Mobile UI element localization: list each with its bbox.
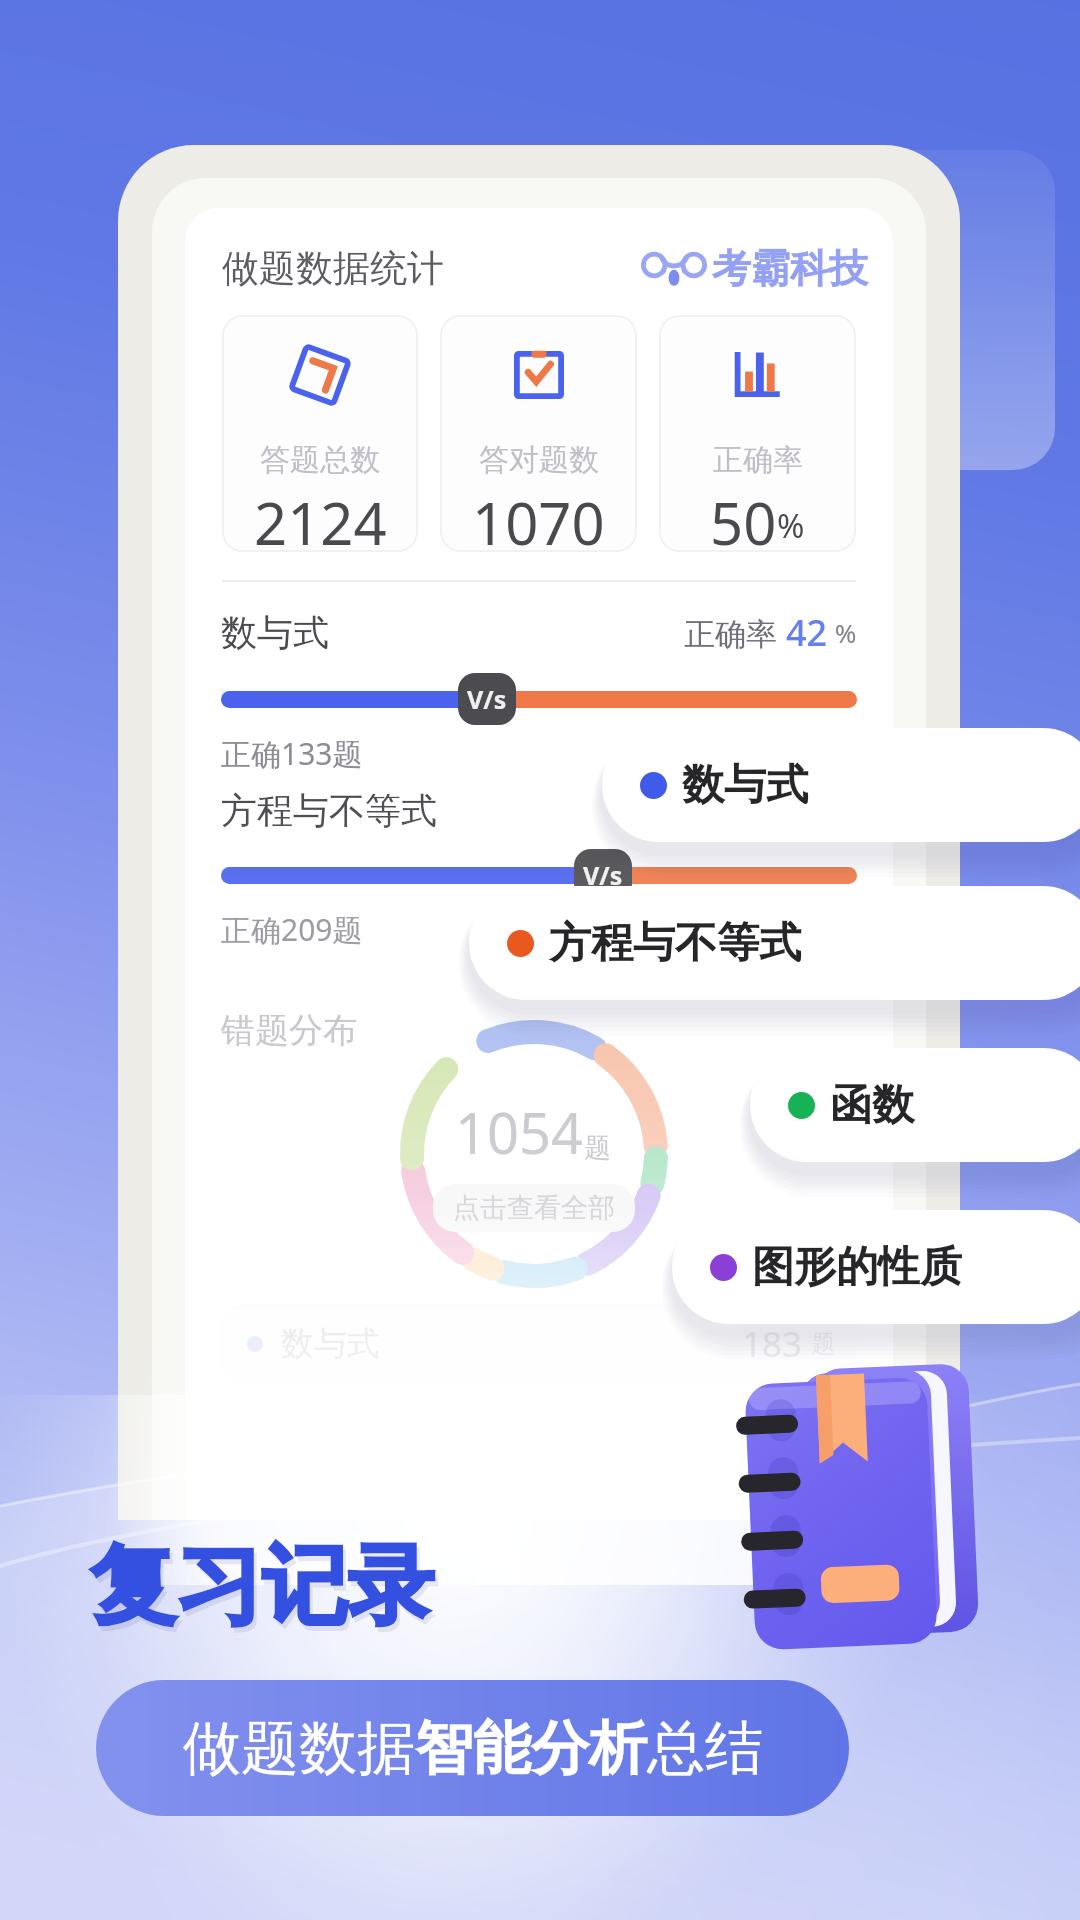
staticText: 1054 bbox=[455, 1094, 584, 1170]
staticText: 方程与不等式 bbox=[549, 917, 801, 970]
staticText: 答题总数 bbox=[260, 441, 380, 479]
staticText: 函数 bbox=[830, 1079, 914, 1132]
button[interactable]: 数与式 bbox=[602, 728, 1080, 842]
staticText: % bbox=[828, 615, 857, 650]
staticText: 总结 bbox=[647, 1712, 763, 1785]
staticText: 正确133题 bbox=[221, 733, 363, 774]
staticText: 方程与不等式 bbox=[221, 788, 437, 833]
staticText: 做题数据 bbox=[183, 1712, 415, 1785]
staticText: 2124 bbox=[254, 483, 387, 552]
button[interactable]: 数与式 bbox=[221, 1304, 857, 1384]
button[interactable]: Compare bbox=[574, 849, 632, 901]
staticText: 点击查看全部 bbox=[453, 1191, 615, 1225]
staticText: 考霸科技 bbox=[712, 244, 868, 293]
staticText: 错题分布 bbox=[221, 1009, 357, 1052]
button[interactable]: 正确率 bbox=[659, 315, 856, 552]
staticText: 数与式 bbox=[682, 759, 808, 812]
staticText: 复习记录 bbox=[93, 1537, 437, 1645]
staticText: V/s bbox=[467, 682, 507, 716]
staticText: 数与式 bbox=[281, 1323, 380, 1365]
staticText: 复习记录 bbox=[90, 1532, 434, 1640]
button[interactable]: 函数 bbox=[750, 1048, 1080, 1162]
staticText: 正确209题 bbox=[221, 909, 363, 950]
staticText: 图形的性质 bbox=[752, 1241, 962, 1294]
button[interactable]: 答对题数 bbox=[440, 315, 637, 552]
staticText: 50 bbox=[710, 483, 777, 552]
button[interactable]: 答题总数 bbox=[222, 315, 418, 552]
staticText: 正确率 bbox=[684, 612, 786, 654]
staticText: 智能分析 bbox=[415, 1712, 647, 1785]
staticText: 数与式 bbox=[221, 610, 329, 655]
staticText: % bbox=[777, 503, 805, 548]
staticText: 正确率 bbox=[713, 441, 803, 479]
button[interactable]: 方程与不等式 bbox=[469, 886, 1080, 1000]
button[interactable]: Compare bbox=[458, 673, 516, 725]
button[interactable]: 做题数据 bbox=[96, 1680, 849, 1816]
staticText: V/s bbox=[583, 858, 623, 892]
staticText: 题 bbox=[811, 1329, 835, 1359]
staticText: 183 bbox=[742, 1320, 803, 1368]
button[interactable]: 点击查看全部 bbox=[433, 1184, 635, 1232]
staticText: 1070 bbox=[472, 483, 605, 552]
staticText: 42 bbox=[786, 608, 828, 657]
button[interactable]: 图形的性质 bbox=[672, 1210, 1080, 1324]
staticText: 答对题数 bbox=[479, 441, 599, 479]
staticText: 做题数据统计 bbox=[222, 245, 444, 292]
staticText: 题 bbox=[584, 1131, 611, 1165]
